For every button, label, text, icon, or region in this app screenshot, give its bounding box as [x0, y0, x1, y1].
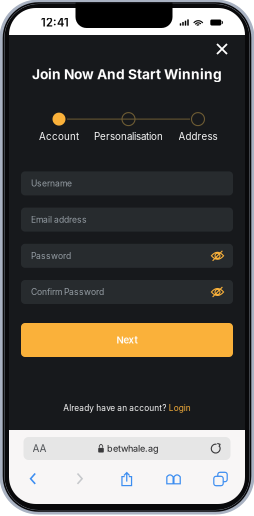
button[interactable]: Forward: [65, 466, 95, 492]
button[interactable]: Password: [21, 244, 233, 268]
button[interactable]: Back: [18, 466, 48, 492]
staticText: Already have an account?: [63, 403, 166, 413]
staticText: Join Now And Start Winning: [32, 66, 222, 83]
staticText: Personalisation: [94, 131, 163, 142]
staticText: Confirm Password: [31, 287, 104, 297]
staticText: Address: [178, 131, 217, 142]
button[interactable]: Username: [21, 171, 233, 195]
staticText: Email address: [31, 214, 87, 225]
staticText: 12:41: [41, 16, 69, 29]
staticText: Password: [31, 251, 71, 261]
button[interactable]: Tabs: [205, 466, 235, 492]
staticText: Username: [31, 178, 72, 188]
button[interactable]: Bookmarks: [159, 466, 189, 492]
staticText: betwhale.ag: [107, 443, 159, 454]
button[interactable]: Login: [169, 403, 191, 413]
staticText: Login: [169, 403, 191, 413]
button[interactable]: AA: [23, 437, 230, 460]
staticText: Account: [39, 131, 79, 142]
button[interactable]: Share: [112, 466, 142, 492]
staticText: Next: [116, 334, 137, 346]
staticText: AA: [32, 442, 46, 455]
button[interactable]: Close: [211, 38, 233, 60]
button[interactable]: Next: [21, 323, 233, 357]
button[interactable]: Email address: [21, 208, 233, 232]
button[interactable]: Confirm Password: [21, 280, 233, 304]
